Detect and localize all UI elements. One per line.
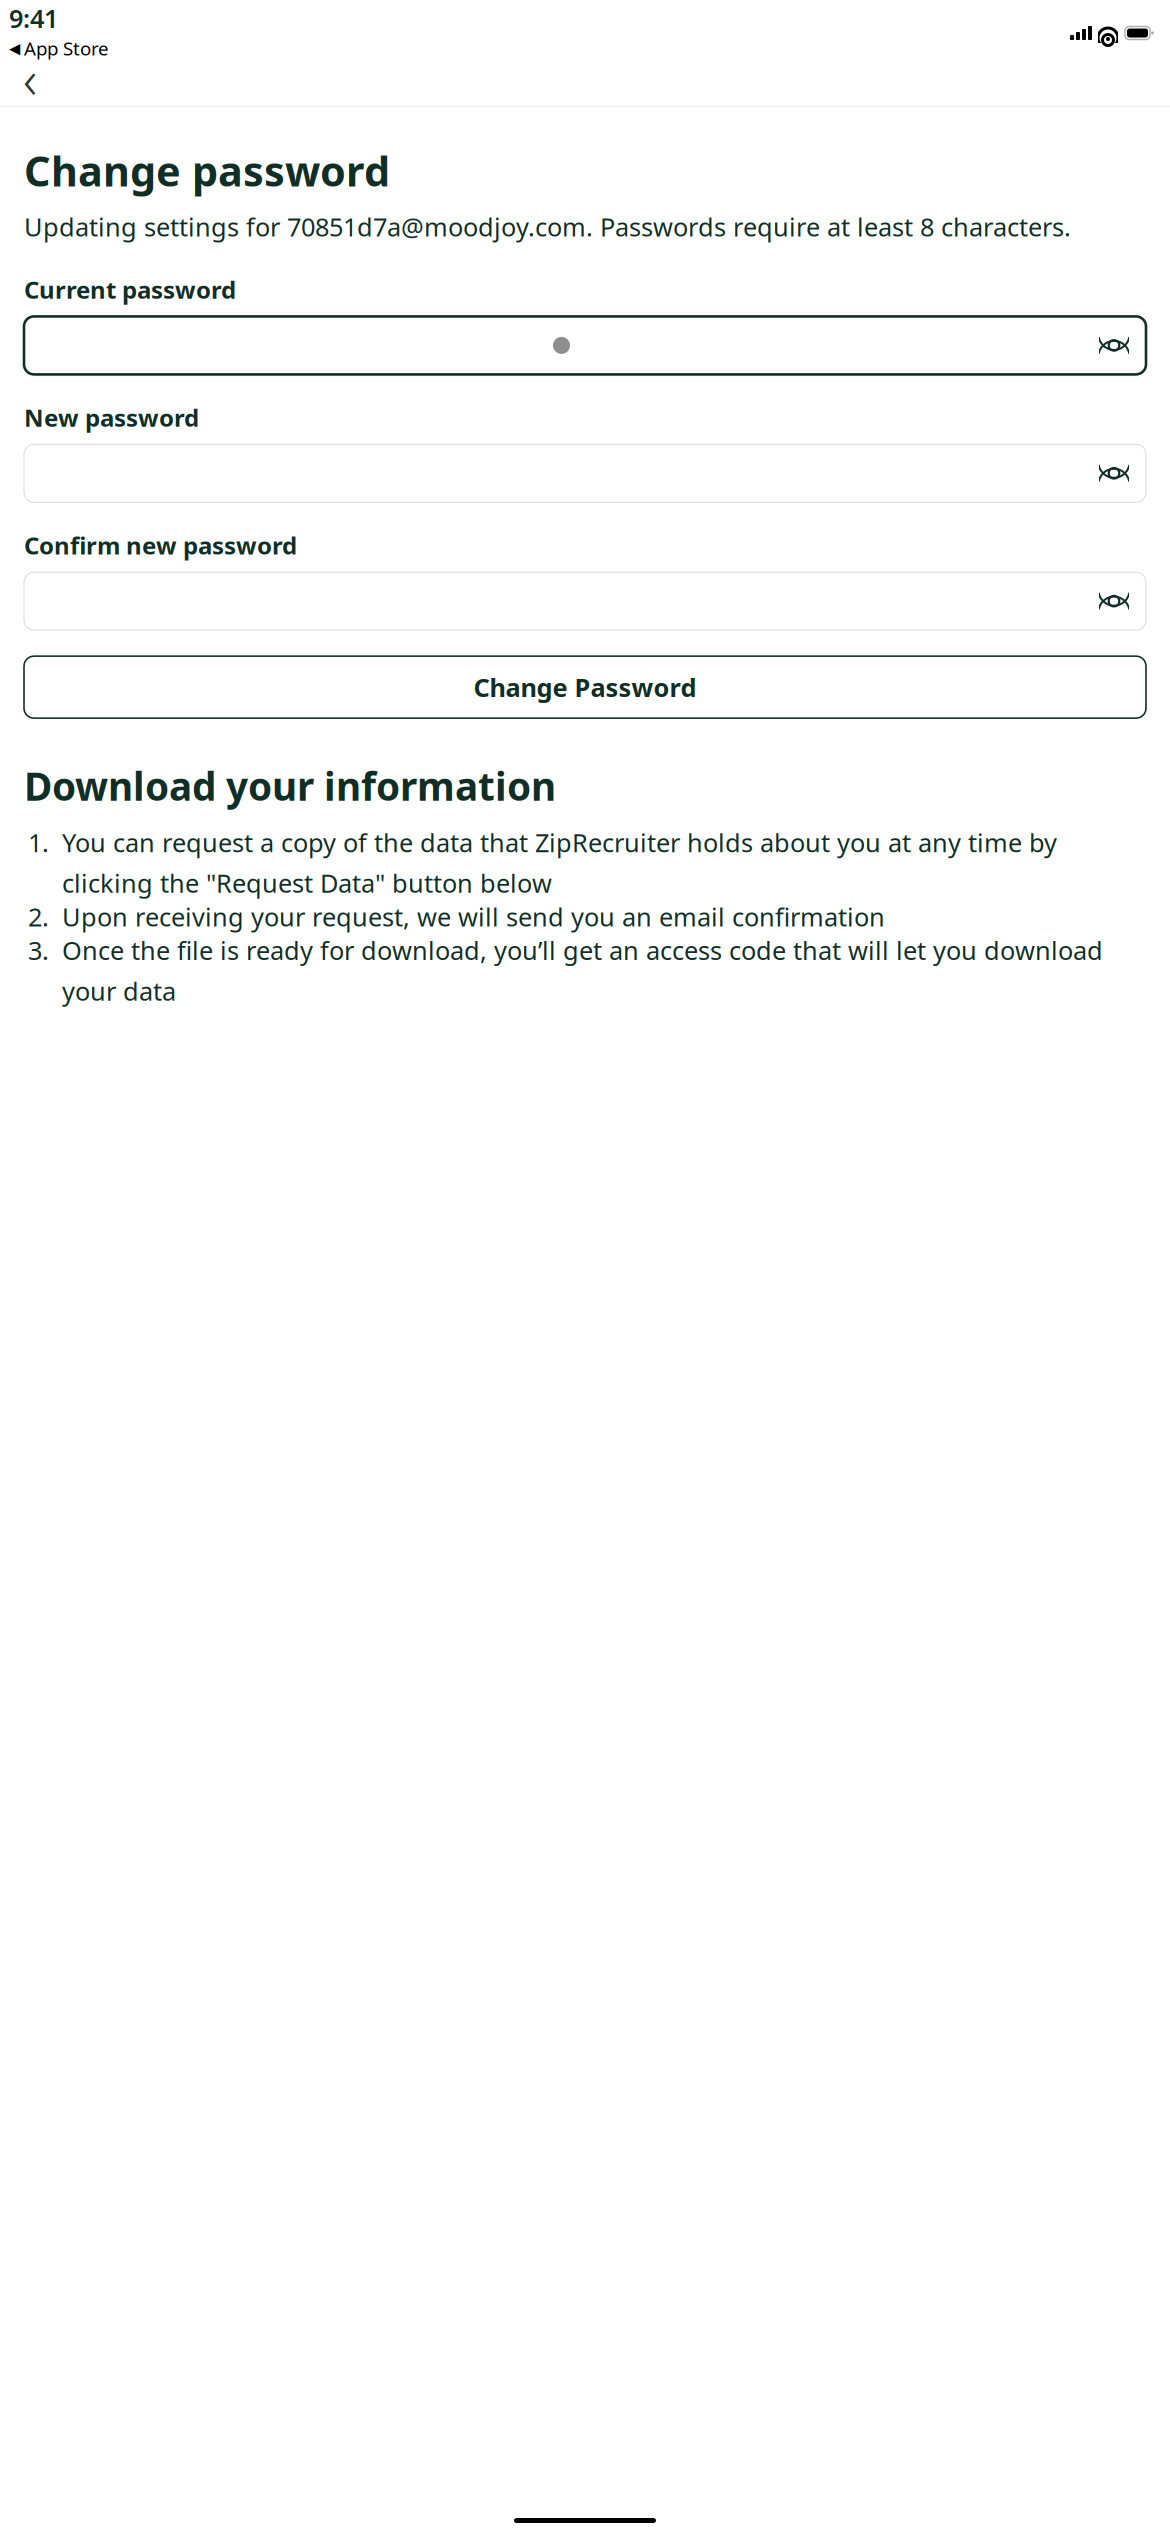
button[interactable]: Back [8, 56, 52, 100]
staticText: Current password [24, 273, 236, 305]
staticText: ‹ [23, 43, 37, 113]
staticText: Change Password [473, 670, 696, 704]
staticText: Upon receiving your request, we will sen… [62, 900, 885, 933]
staticText: Change password [24, 143, 390, 198]
staticText: Once the file is ready for download, you… [62, 933, 1103, 1008]
button[interactable] [24, 572, 1146, 630]
staticText: ◀ [9, 40, 20, 57]
staticText: You can request a copy of the data that … [62, 825, 1057, 900]
button[interactable]: ◀ [9, 36, 109, 61]
staticText: Updating settings for 70851d7a@moodjoy.c… [24, 210, 1071, 243]
staticText: Confirm new password [24, 529, 297, 561]
staticText: 1. [28, 825, 49, 859]
button[interactable] [24, 316, 1146, 374]
staticText: 9:41 [9, 1, 58, 35]
staticText: App Store [24, 36, 109, 61]
staticText: 3. [28, 933, 49, 967]
staticText: Download your information [24, 760, 556, 811]
button[interactable]: Change Password [24, 656, 1146, 718]
staticText: New password [24, 401, 199, 433]
staticText: 2. [28, 900, 49, 933]
button[interactable] [24, 444, 1146, 502]
